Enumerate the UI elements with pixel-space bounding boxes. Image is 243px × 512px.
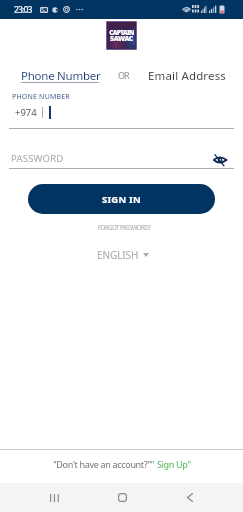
staticText: CAPTAIN [107, 28, 136, 37]
button[interactable]: ENGLISH [94, 246, 152, 264]
staticText: "Don't have an account?"" [53, 458, 157, 470]
staticText: OR [118, 69, 129, 81]
button[interactable]: Show password [211, 150, 229, 168]
button[interactable]: Recents [20, 483, 88, 512]
button[interactable]: Email Address [148, 68, 226, 84]
staticText: 23:03 [14, 4, 32, 16]
button[interactable]: OR [118, 69, 129, 81]
staticText: FORGOT PASSWORD? [98, 223, 151, 231]
staticText: SIGN IN [102, 193, 141, 206]
staticText: SAWAC [107, 34, 136, 43]
staticText: Phone Number [21, 68, 101, 84]
staticText: Sign Up" [157, 458, 191, 470]
button[interactable]: Home [88, 483, 156, 512]
button[interactable]: SIGN IN [28, 184, 215, 214]
button[interactable]: Phone Number [21, 64, 101, 80]
staticText: Email Address [148, 68, 226, 84]
staticText: PHONE NUMBER [12, 92, 70, 102]
staticText: PASSWORD [11, 152, 64, 165]
button[interactable]: "Don't have an account?"" [53, 458, 191, 470]
button[interactable]: FORGOT PASSWORD? [95, 220, 154, 234]
button[interactable]: Back [156, 483, 224, 512]
staticText: +974 [15, 106, 37, 119]
staticText: ENGLISH [97, 248, 139, 262]
